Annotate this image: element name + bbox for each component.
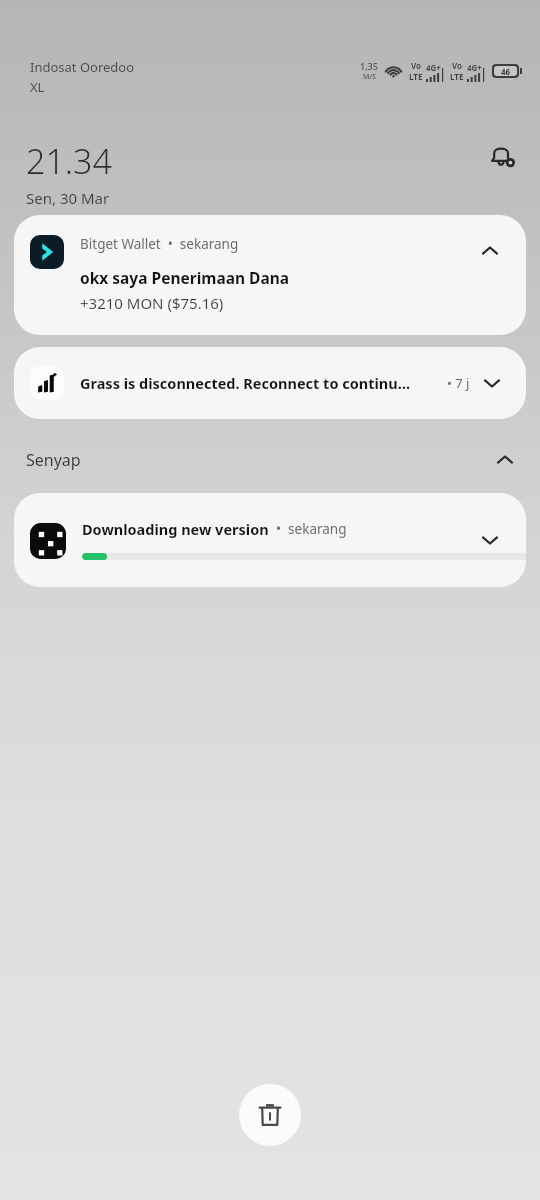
staticText: 4G+ bbox=[426, 62, 441, 73]
button[interactable]: Notification settings bbox=[478, 132, 526, 180]
staticText: Bitget Wallet • sekarang bbox=[80, 235, 239, 253]
button[interactable]: Clear all notifications bbox=[239, 1084, 301, 1146]
staticText: Downloading new version bbox=[82, 519, 269, 539]
staticText: M/S bbox=[363, 72, 376, 82]
staticText: 1,35 bbox=[360, 60, 378, 72]
staticText: LTE bbox=[409, 71, 423, 82]
staticText: Vo bbox=[411, 60, 422, 71]
button[interactable]: Expand bbox=[470, 361, 514, 405]
staticText: • sekarang bbox=[269, 520, 347, 538]
button[interactable]: Collapse bbox=[468, 229, 512, 273]
button[interactable]: Senyap bbox=[26, 437, 514, 483]
staticText: 21.34 bbox=[26, 138, 112, 184]
staticText: okx saya Penerimaan Dana bbox=[80, 267, 290, 288]
staticText: XL bbox=[30, 78, 45, 96]
staticText: Grass is disconnected. Reconnect to cont… bbox=[80, 373, 411, 393]
button[interactable]: Bitget Wallet • sekarang bbox=[14, 215, 526, 335]
staticText: Indosat Ooredoo bbox=[30, 58, 135, 76]
button[interactable]: Grass is disconnected. Reconnect to cont… bbox=[14, 347, 526, 419]
staticText: LTE bbox=[450, 71, 464, 82]
button[interactable]: Downloading new version bbox=[14, 493, 526, 587]
staticText: • 7 j bbox=[447, 374, 470, 392]
button[interactable]: Expand bbox=[468, 518, 512, 562]
staticText: Sen, 30 Mar bbox=[26, 188, 110, 208]
staticText: Senyap bbox=[26, 449, 81, 471]
staticText: +3210 MON ($75.16) bbox=[80, 293, 224, 313]
staticText: 4G+ bbox=[467, 62, 482, 73]
staticText: Vo bbox=[452, 60, 463, 71]
staticText: 46 bbox=[501, 66, 511, 76]
